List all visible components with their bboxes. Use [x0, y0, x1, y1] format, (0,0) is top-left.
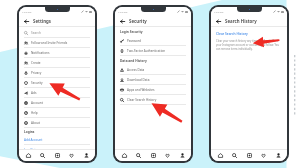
staticText: About [31, 121, 40, 125]
button[interactable]: Home [215, 150, 226, 161]
staticText: Create [31, 61, 41, 65]
button[interactable]: Back [23, 18, 29, 24]
staticText: Login Security [120, 30, 143, 34]
button[interactable]: About [24, 118, 90, 127]
staticText: 1:23 am [22, 10, 32, 13]
staticText: Help [31, 111, 38, 115]
button[interactable]: Profile [177, 150, 188, 161]
button[interactable]: Add post [244, 150, 255, 161]
staticText: Download Data [127, 78, 150, 82]
button[interactable]: Profile [273, 150, 284, 161]
button[interactable]: Privacy [24, 68, 90, 77]
button[interactable]: Back [119, 18, 125, 24]
button[interactable]: Search [133, 150, 144, 161]
staticText: Follow and Invite Friends [31, 41, 68, 45]
staticText: Search [31, 31, 41, 35]
button[interactable]: Activity [162, 150, 173, 161]
staticText: Privacy [31, 71, 42, 75]
button[interactable]: Add Account [24, 138, 43, 142]
button[interactable]: Notifications [24, 48, 90, 57]
staticText: Data and History [120, 59, 147, 63]
button[interactable]: Add post [148, 150, 159, 161]
button[interactable]: Home [23, 150, 34, 161]
button[interactable]: Download Data [120, 75, 186, 84]
staticText: Two-Factor Authentication [127, 49, 166, 53]
staticText: Clear your search history any time; it w… [216, 39, 281, 51]
button[interactable]: Clear Search History [216, 31, 248, 35]
staticText: Password [127, 39, 141, 43]
staticText: Clear Search History [127, 98, 157, 102]
button[interactable]: Ads [24, 88, 90, 97]
button[interactable]: Create [24, 58, 90, 67]
staticText: 1:23 am [214, 10, 224, 13]
button[interactable]: Activity [66, 150, 77, 161]
staticText: Settings [33, 18, 51, 24]
button[interactable]: Follow and Invite Friends [24, 38, 90, 47]
button[interactable]: Apps and Websites [120, 85, 186, 94]
button[interactable]: Account [24, 98, 90, 107]
staticText: Notifications [31, 51, 50, 55]
button[interactable]: Back [215, 18, 221, 24]
staticText: Ads [31, 91, 37, 95]
button[interactable]: Profile [81, 150, 92, 161]
button[interactable]: Log Out [24, 148, 36, 149]
button[interactable]: Security [24, 78, 90, 87]
button[interactable]: Search [37, 150, 48, 161]
button[interactable]: Two-Factor Authentication [120, 46, 186, 55]
staticText: Security [129, 18, 147, 24]
staticText: 1:23 am [118, 10, 128, 13]
button[interactable]: Home [119, 150, 130, 161]
staticText: Logins [24, 130, 35, 134]
staticText: Account [31, 101, 43, 105]
button[interactable]: Add post [52, 150, 63, 161]
button[interactable]: Access Data [120, 65, 186, 74]
button[interactable]: Search [229, 150, 240, 161]
staticText: Security [31, 81, 43, 85]
button[interactable]: Search [24, 29, 90, 37]
button[interactable]: Activity [258, 150, 269, 161]
staticText: Access Data [127, 68, 145, 72]
button[interactable]: Help [24, 108, 90, 117]
button[interactable]: Clear Search History [120, 95, 186, 104]
staticText: Search History [225, 18, 257, 24]
button[interactable]: Password [120, 36, 186, 45]
staticText: Apps and Websites [127, 88, 155, 92]
